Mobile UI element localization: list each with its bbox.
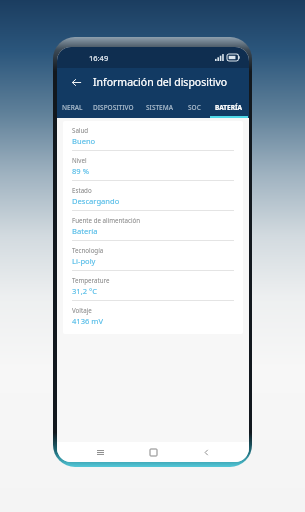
button[interactable]: NERAL [57, 96, 87, 118]
staticText: Temperature [72, 276, 110, 284]
staticText: Bueno [72, 136, 96, 146]
staticText: Descargando [72, 196, 120, 206]
staticText: NERAL [62, 103, 83, 112]
button[interactable]: BATERÍA [208, 96, 249, 118]
staticText: DISPOSITIVO [93, 103, 134, 112]
button[interactable]: Recent apps [90, 442, 110, 462]
staticText: SISTEMA [146, 103, 173, 112]
staticText: Nivel [72, 156, 87, 164]
staticText: 4136 mV [72, 316, 104, 326]
staticText: Li-poly [72, 256, 96, 266]
staticText: Voltaje [72, 306, 92, 314]
button[interactable]: Nivel [72, 151, 234, 180]
staticText: Salud [72, 126, 89, 134]
button[interactable]: Temperature [72, 271, 234, 300]
button[interactable]: Back [65, 71, 87, 93]
staticText: Tecnología [72, 246, 104, 254]
staticText: Estado [72, 186, 92, 194]
staticText: 16:49 [89, 53, 109, 63]
staticText: Fuente de alimentación [72, 216, 141, 224]
staticText: Información del dispositivo [93, 75, 228, 89]
staticText: BATERÍA [215, 103, 243, 112]
button[interactable]: Fuente de alimentación [72, 211, 234, 240]
button[interactable]: Estado [72, 181, 234, 210]
button[interactable]: Salud [72, 121, 234, 150]
staticText: Batería [72, 226, 98, 236]
staticText: SOC [188, 103, 201, 112]
button[interactable]: Voltaje [72, 301, 234, 330]
staticText: 89 % [72, 166, 89, 176]
staticText: 31,2 °C [72, 286, 98, 296]
button[interactable]: SOC [180, 96, 208, 118]
button[interactable]: DISPOSITIVO [87, 96, 139, 118]
button[interactable]: Home [143, 442, 163, 462]
button[interactable]: SISTEMA [139, 96, 180, 118]
button[interactable]: Back [196, 442, 216, 462]
button[interactable]: Tecnología [72, 241, 234, 270]
